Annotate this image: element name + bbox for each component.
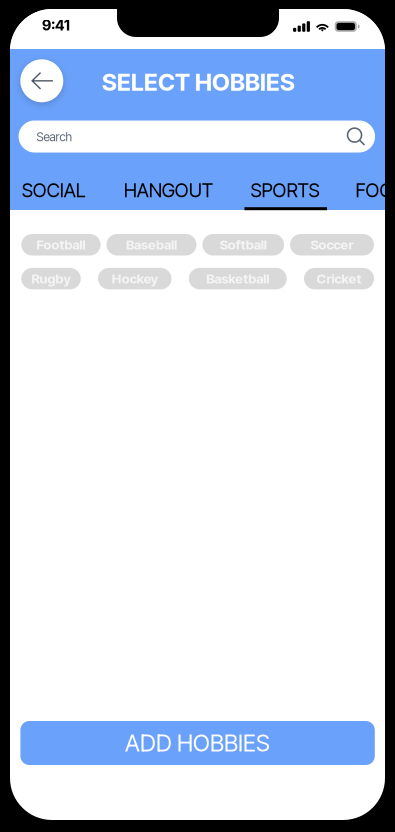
staticText: Football bbox=[36, 237, 85, 253]
button[interactable]: Back bbox=[20, 59, 63, 102]
staticText: FOOD bbox=[355, 179, 395, 202]
button[interactable]: ADD HOBBIES bbox=[20, 721, 375, 765]
button[interactable]: Softball bbox=[202, 234, 284, 255]
button[interactable]: Cricket bbox=[304, 268, 374, 289]
staticText: ADD HOBBIES bbox=[125, 729, 270, 757]
staticText: Search bbox=[37, 130, 73, 144]
staticText: Rugby bbox=[31, 271, 70, 287]
button[interactable]: HANGOUT bbox=[124, 176, 213, 204]
staticText: Cricket bbox=[316, 271, 361, 287]
staticText: Soccer bbox=[310, 237, 353, 253]
staticText: Hockey bbox=[112, 271, 158, 287]
staticText: Softball bbox=[220, 237, 267, 253]
button[interactable]: SOCIAL bbox=[22, 176, 86, 204]
button[interactable]: Rugby bbox=[21, 268, 81, 289]
button[interactable]: Basketball bbox=[189, 268, 287, 289]
staticText: HANGOUT bbox=[124, 179, 213, 202]
staticText: SPORTS bbox=[250, 179, 319, 202]
staticText: Baseball bbox=[126, 237, 177, 253]
button[interactable]: Hockey bbox=[98, 268, 171, 289]
button[interactable]: Soccer bbox=[290, 234, 374, 255]
staticText: Basketball bbox=[206, 271, 269, 287]
button[interactable]: Football bbox=[21, 234, 101, 255]
button[interactable]: Search bbox=[19, 120, 375, 152]
button[interactable]: FOOD bbox=[355, 176, 395, 204]
staticText: SOCIAL bbox=[22, 179, 86, 202]
button[interactable]: SPORTS bbox=[250, 176, 319, 204]
button[interactable]: Baseball bbox=[106, 234, 196, 255]
staticText: 9:41 bbox=[42, 16, 70, 34]
staticText: SELECT HOBBIES bbox=[102, 68, 295, 96]
